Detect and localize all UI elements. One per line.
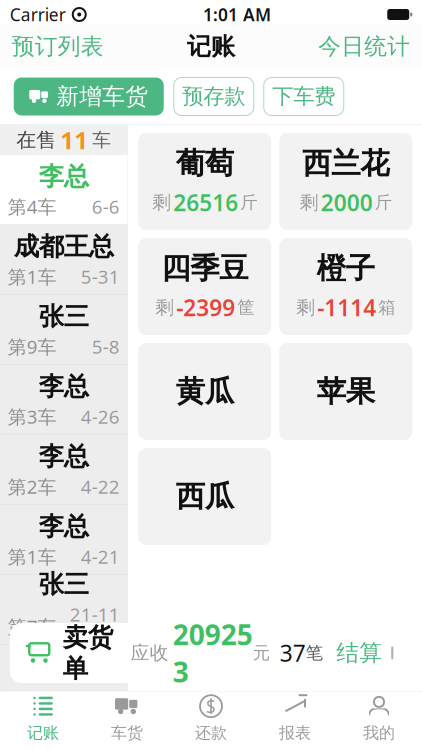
staticText: 张三 xyxy=(39,301,89,332)
staticText: 第1车 xyxy=(8,544,57,569)
button[interactable]: 李总 xyxy=(0,365,128,435)
staticText: 报表 xyxy=(279,723,311,743)
button[interactable]: 预存款 xyxy=(174,77,254,115)
staticText: 我的 xyxy=(363,723,395,743)
staticText: 斤 xyxy=(240,192,257,213)
staticText: 李总 xyxy=(39,161,89,192)
staticText: 2000 xyxy=(321,187,373,218)
staticText: 11 xyxy=(60,124,88,156)
staticText: 第2车 xyxy=(8,474,57,499)
staticText: 21-11-2 xyxy=(70,602,120,651)
staticText: 车 xyxy=(92,128,111,151)
staticText: 李总 xyxy=(39,441,89,472)
staticText: 6-6 xyxy=(92,194,120,219)
staticText: 记账 xyxy=(187,32,235,61)
staticText: 橙子 xyxy=(317,250,375,286)
staticText: 记账 xyxy=(27,723,59,743)
staticText: 卖货单 xyxy=(63,622,113,684)
staticText: 斤 xyxy=(375,192,392,213)
staticText: 今日统计 xyxy=(318,33,410,60)
button[interactable]: 成都王总 xyxy=(0,225,128,295)
staticText: 4-21 xyxy=(81,544,120,569)
staticText: -2399 xyxy=(176,292,235,323)
staticText: 第9车 xyxy=(8,334,57,359)
staticText: 李总 xyxy=(39,371,89,402)
staticText: 第4车 xyxy=(8,194,57,219)
staticText: 箱 xyxy=(378,297,395,318)
staticText: 预存款 xyxy=(182,83,245,110)
button[interactable]: 苹果 xyxy=(279,343,412,440)
button[interactable]: 报表 xyxy=(253,691,337,745)
button[interactable]: 四季豆 xyxy=(138,238,271,335)
staticText: 剩 xyxy=(296,296,315,319)
button[interactable]: 李总 xyxy=(0,505,128,575)
staticText: 剩 xyxy=(155,296,174,319)
staticText: S xyxy=(206,695,216,718)
staticText: 四季豆 xyxy=(161,250,248,286)
staticText: 预订列表 xyxy=(12,33,104,60)
button[interactable]: 张三 xyxy=(0,575,128,645)
button[interactable]: 记账 xyxy=(1,691,85,745)
staticText: 李总 xyxy=(39,511,89,542)
button[interactable]: 橙子 xyxy=(279,238,412,335)
button[interactable]: 葡萄 xyxy=(138,133,271,230)
staticText: 下车费 xyxy=(272,83,335,110)
button[interactable]: 西兰花 xyxy=(279,133,412,230)
staticText: 209253 xyxy=(173,616,253,690)
button[interactable]: 西瓜 xyxy=(138,448,271,545)
staticText: 26516 xyxy=(173,187,238,218)
staticText: 应收 xyxy=(131,641,169,664)
staticText: 4-22 xyxy=(81,474,120,499)
staticText: 5-8 xyxy=(92,334,120,359)
button[interactable]: 卖货单 xyxy=(0,623,422,691)
button[interactable]: 李总 xyxy=(0,435,128,505)
button[interactable]: 新增车货 xyxy=(14,77,164,115)
staticText: 新增车货 xyxy=(56,83,148,110)
staticText xyxy=(66,0,72,29)
staticText: 剩 xyxy=(152,191,171,214)
staticText: -1114 xyxy=(317,292,376,323)
button[interactable]: 车货 xyxy=(85,691,169,745)
staticText: 4-26 xyxy=(81,404,120,429)
button[interactable]: 黄瓜 xyxy=(138,343,271,440)
button[interactable]: 张三 xyxy=(0,295,128,365)
staticText: 车货 xyxy=(111,723,143,743)
staticText: 在售 xyxy=(16,128,56,152)
staticText: 剩 xyxy=(300,191,319,214)
button[interactable]: S xyxy=(169,691,253,745)
staticText: 苹果 xyxy=(317,373,375,409)
staticText: 西瓜 xyxy=(176,478,234,514)
staticText: 第3车 xyxy=(8,404,57,429)
button[interactable]: 我的 xyxy=(337,691,421,745)
staticText: Carrier xyxy=(10,3,66,26)
staticText: 成都王总 xyxy=(14,231,114,262)
button[interactable]: 预订列表 xyxy=(0,25,116,68)
staticText: 第7车 xyxy=(8,614,57,639)
staticText: 37 xyxy=(280,638,306,668)
staticText: 第1车 xyxy=(8,264,57,289)
button[interactable]: 下车费 xyxy=(264,77,344,115)
staticText: 黄瓜 xyxy=(176,373,234,409)
staticText: 5-31 xyxy=(81,264,120,289)
staticText: 张三 xyxy=(39,569,89,600)
button[interactable]: 李总 xyxy=(0,155,128,225)
staticText: 还款 xyxy=(195,723,227,743)
staticText: 结算 xyxy=(336,639,382,667)
staticText: 葡萄 xyxy=(176,145,234,181)
staticText: 1:01 AM xyxy=(203,3,271,26)
staticText: 西兰花 xyxy=(302,145,389,181)
staticText: 元 xyxy=(253,642,270,664)
staticText: 笔 xyxy=(306,642,323,664)
staticText: 筐 xyxy=(237,297,254,318)
button[interactable]: 今日统计 xyxy=(306,25,422,68)
